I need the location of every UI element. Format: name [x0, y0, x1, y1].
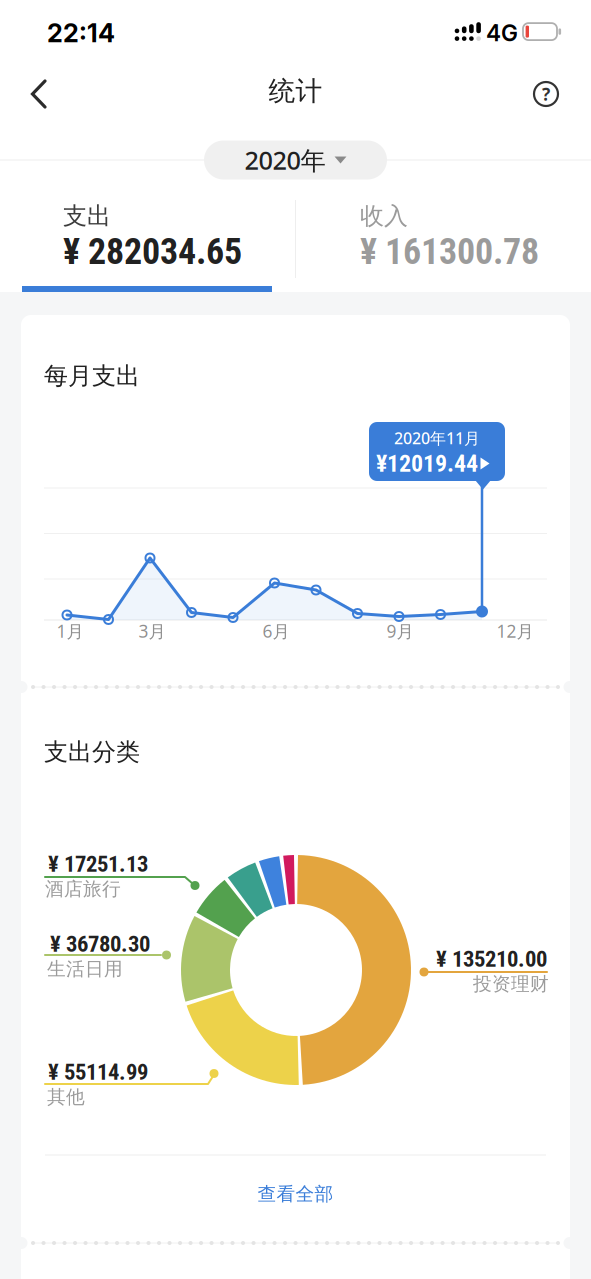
staticText: 2020年 — [244, 143, 325, 177]
button[interactable]: 2020年 — [204, 140, 387, 179]
staticText: 1月 — [56, 619, 83, 642]
staticText: 支出 — [63, 201, 111, 231]
staticText: 4G — [486, 19, 518, 47]
staticText: 生活日用 — [47, 957, 123, 980]
staticText: ¥ 135210.00 — [436, 946, 547, 972]
staticText: ¥ 17251.13 — [48, 851, 148, 877]
staticText: 9月 — [386, 619, 413, 642]
staticText: 6月 — [262, 619, 289, 642]
staticText: ¥ 36780.30 — [50, 931, 150, 957]
staticText: ¥12019.44 — [376, 449, 478, 477]
staticText: 其他 — [47, 1085, 85, 1108]
button[interactable]: 支出 — [63, 201, 295, 273]
button[interactable]: Back — [19, 78, 63, 110]
staticText: 2020年11月 — [394, 427, 480, 449]
staticText: 收入 — [360, 201, 408, 231]
staticText: 酒店旅行 — [45, 877, 121, 900]
button[interactable]: 收入 — [360, 201, 591, 273]
button[interactable]: 查看全部 — [215, 1172, 375, 1216]
staticText: ¥ 282034.65 — [63, 231, 242, 273]
staticText: 支出分类 — [44, 737, 140, 767]
staticText: 22:14 — [47, 18, 115, 48]
staticText: 每月支出 — [44, 361, 140, 391]
staticText: 查看全部 — [257, 1182, 333, 1205]
staticText: 统计 — [268, 75, 322, 107]
staticText: 12月 — [496, 619, 533, 642]
staticText: 投资理财 — [473, 972, 549, 995]
staticText: ¥ 55114.99 — [48, 1059, 148, 1085]
button[interactable]: Help — [526, 74, 566, 114]
staticText: ¥ 161300.78 — [360, 231, 539, 273]
button[interactable]: 2020年11月 — [369, 422, 505, 481]
staticText: ? — [542, 82, 550, 105]
staticText: 3月 — [138, 619, 165, 642]
